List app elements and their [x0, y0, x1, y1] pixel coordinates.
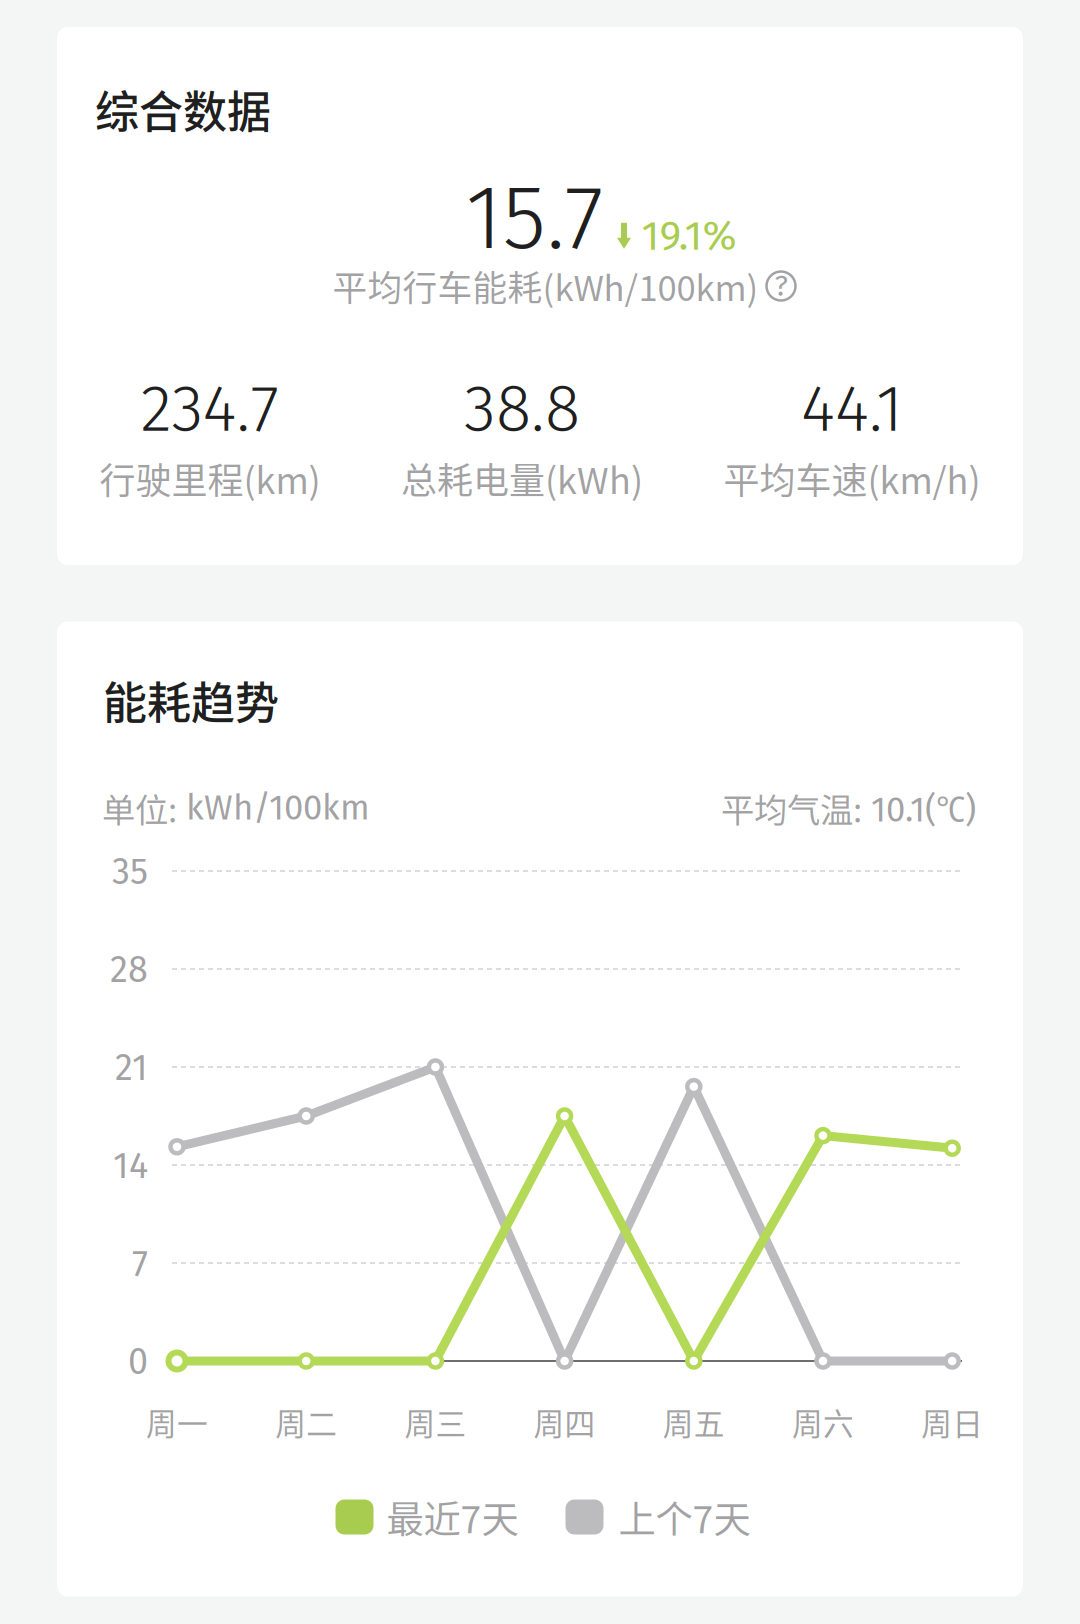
staticText: 平均行车能耗(kWh/100km)	[332, 261, 758, 311]
staticText: 10.1(℃)	[862, 784, 976, 832]
staticText: 综合数据	[95, 77, 271, 141]
staticText: 总耗电量(kWh)	[401, 452, 643, 504]
button[interactable]: 最近7天	[335, 1490, 518, 1544]
button[interactable]: 44.1	[692, 372, 1012, 502]
staticText: 周五	[663, 1400, 725, 1444]
staticText: 28	[110, 948, 148, 992]
staticText: 周三	[404, 1400, 466, 1444]
staticText: 44.1	[801, 370, 903, 448]
staticText: 平均气温:	[721, 784, 862, 832]
staticText: 周二	[275, 1400, 337, 1444]
staticText: kWh/100km	[177, 787, 370, 829]
staticText: 38.8	[464, 370, 580, 448]
staticText: 21	[115, 1046, 148, 1090]
staticText: 行驶里程(km)	[99, 452, 320, 504]
staticText: 最近7天	[386, 1490, 518, 1544]
staticText: ?	[774, 268, 787, 304]
staticText: 0	[128, 1340, 148, 1384]
staticText: 234.7	[140, 370, 279, 448]
staticText: 15.7	[465, 164, 603, 272]
button[interactable]: 平均行车能耗说明	[164, 258, 964, 314]
staticText: 周一	[146, 1400, 208, 1444]
staticText: 上个7天	[618, 1490, 750, 1544]
staticText: 周六	[792, 1400, 854, 1444]
staticText: 周日	[921, 1400, 983, 1444]
staticText: 平均车速(km/h)	[723, 452, 980, 504]
staticText: 7	[132, 1242, 148, 1286]
staticText: 35	[112, 850, 148, 894]
button[interactable]: 234.7	[50, 372, 370, 502]
staticText: 19.1%	[641, 211, 736, 261]
staticText: 能耗趋势	[103, 668, 279, 732]
staticText: 14	[113, 1144, 148, 1188]
button[interactable]: 上个7天	[565, 1490, 750, 1544]
staticText: 周四	[534, 1400, 596, 1444]
staticText: 单位:	[102, 784, 177, 832]
button[interactable]: 38.8	[362, 372, 682, 502]
